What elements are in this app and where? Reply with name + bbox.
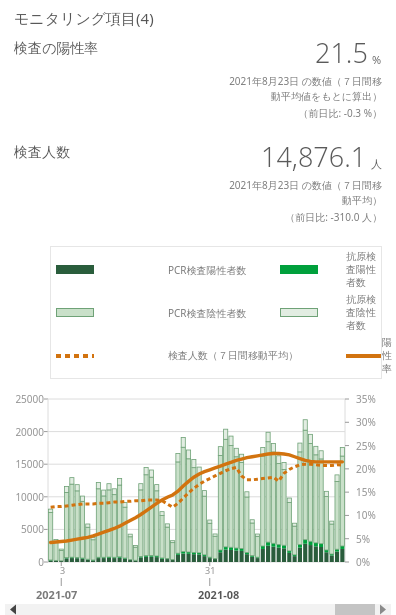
staticText: % (372, 52, 382, 67)
staticText: 検査人数 (14, 144, 70, 162)
staticText: 20% (356, 462, 376, 476)
staticText: 2021-07 (36, 587, 78, 602)
staticText: 検査の陽性率 (14, 40, 99, 58)
staticText: PCR検査陽性者数 (168, 263, 280, 277)
button[interactable]: PCR検査陰性者数 (50, 293, 382, 332)
button[interactable]: 検査人数（７日間移動平均） (50, 336, 382, 375)
staticText: 3 (60, 564, 66, 576)
staticText: 2021年8月23日 の数値（７日間移 (229, 178, 382, 192)
staticText: 2021-08 (198, 587, 240, 602)
staticText: 14,876.1 (261, 138, 367, 175)
staticText: 動平均値をもとに算出） (271, 90, 382, 103)
staticText: PCR検査陰性者数 (168, 306, 280, 320)
staticText: 21.5 (315, 34, 368, 71)
staticText: 31 (205, 564, 216, 576)
staticText: 5% (356, 532, 371, 546)
staticText: （前日比: -0.3 %） (298, 106, 382, 120)
staticText: 抗原検査陽性者数 (346, 250, 382, 289)
staticText: 5000 (21, 522, 44, 536)
staticText: 30% (356, 415, 376, 429)
staticText: 15000 (15, 457, 44, 471)
button[interactable]: Horizontal scrollbar (5, 604, 391, 615)
staticText: 2021年8月23日 の数値（７日間移 (229, 74, 382, 88)
staticText: （前日比: -310.0 人） (285, 210, 382, 224)
button[interactable]: 検査の陽性率 (14, 34, 382, 120)
staticText: 抗原検査陰性者数 (346, 293, 382, 332)
staticText: 0 (38, 555, 44, 569)
staticText: 0% (356, 555, 371, 569)
button[interactable]: 検査人数 (14, 138, 382, 224)
staticText: 検査人数（７日間移動平均） (168, 349, 346, 362)
staticText: 15% (356, 485, 376, 499)
staticText: 10% (356, 508, 376, 522)
staticText: 35% (356, 392, 376, 406)
staticText: 20000 (15, 425, 44, 439)
staticText: 25000 (15, 392, 44, 406)
staticText: 10000 (15, 490, 44, 504)
staticText: 人 (371, 157, 382, 171)
staticText: 動平均） (342, 194, 382, 207)
staticText: モニタリング項目(4) (14, 8, 154, 28)
button[interactable]: PCR検査陽性者数 (50, 250, 382, 289)
staticText: 25% (356, 439, 376, 453)
